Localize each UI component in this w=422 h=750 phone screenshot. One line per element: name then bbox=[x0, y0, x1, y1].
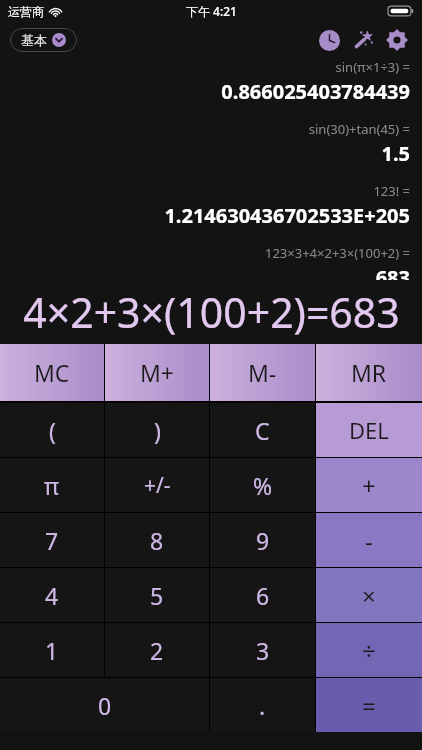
button[interactable]: = bbox=[316, 678, 422, 732]
staticText: 2 bbox=[150, 635, 164, 666]
button[interactable]: π bbox=[0, 458, 104, 512]
staticText: ( bbox=[49, 415, 56, 446]
button[interactable]: + bbox=[316, 458, 422, 512]
button[interactable]: M- bbox=[210, 344, 315, 401]
staticText: MC bbox=[34, 357, 70, 388]
button[interactable]: 9 bbox=[210, 513, 315, 567]
staticText: 7 bbox=[45, 525, 59, 556]
staticText: MR bbox=[351, 357, 387, 388]
staticText: 123×3+4×2+3×(100+2) = bbox=[12, 244, 410, 262]
button[interactable]: 1.5 bbox=[12, 140, 410, 167]
staticText: M+ bbox=[140, 357, 175, 388]
button[interactable]: 4 bbox=[0, 568, 104, 622]
staticText: ) bbox=[154, 415, 161, 446]
staticText: +/- bbox=[144, 471, 171, 500]
button[interactable]: 5 bbox=[105, 568, 209, 622]
button[interactable]: 0.866025403784439 bbox=[12, 78, 410, 105]
button[interactable]: MR bbox=[316, 344, 422, 401]
staticText: 8 bbox=[150, 525, 164, 556]
staticText: C bbox=[255, 415, 270, 446]
button[interactable]: MC bbox=[0, 344, 104, 401]
staticText: 4×2+3×(100+2)=683 bbox=[23, 284, 400, 340]
staticText: % bbox=[253, 470, 273, 501]
button[interactable]: History bbox=[312, 23, 346, 57]
button[interactable]: C bbox=[210, 403, 315, 457]
button[interactable]: 3 bbox=[210, 623, 315, 677]
staticText: ÷ bbox=[362, 634, 376, 667]
staticText: sin(π×1÷3) = bbox=[12, 58, 410, 76]
button[interactable]: Magic bbox=[346, 23, 380, 57]
button[interactable]: 683 bbox=[12, 264, 410, 280]
staticText: × bbox=[362, 579, 376, 612]
button[interactable]: 7 bbox=[0, 513, 104, 567]
button[interactable]: ÷ bbox=[316, 623, 422, 677]
staticText: π bbox=[44, 470, 60, 501]
staticText: 运营商 bbox=[8, 4, 44, 19]
staticText: 下午 4:21 bbox=[186, 3, 237, 19]
button[interactable]: DEL bbox=[316, 403, 422, 457]
staticText: 123! = bbox=[12, 182, 410, 200]
button[interactable]: M+ bbox=[105, 344, 209, 401]
button[interactable]: - bbox=[316, 513, 422, 567]
staticText: 基本 bbox=[21, 32, 47, 48]
staticText: 1 bbox=[45, 635, 59, 666]
button[interactable]: . bbox=[210, 678, 315, 732]
staticText: 6 bbox=[256, 580, 270, 611]
button[interactable]: 1.214630436702533E+205 bbox=[12, 202, 410, 229]
staticText: 0 bbox=[98, 690, 112, 721]
button[interactable]: 1 bbox=[0, 623, 104, 677]
staticText: 3 bbox=[256, 635, 270, 666]
button[interactable]: Settings bbox=[380, 23, 414, 57]
staticText: M- bbox=[248, 357, 277, 388]
staticText: DEL bbox=[349, 415, 389, 445]
button[interactable]: × bbox=[316, 568, 422, 622]
staticText: . bbox=[259, 690, 266, 721]
button[interactable]: 8 bbox=[105, 513, 209, 567]
button[interactable]: +/- bbox=[105, 458, 209, 512]
button[interactable]: 0 bbox=[0, 678, 209, 732]
staticText: 4 bbox=[45, 580, 59, 611]
staticText: = bbox=[362, 689, 376, 722]
staticText: + bbox=[362, 469, 376, 502]
button[interactable]: ) bbox=[105, 403, 209, 457]
button[interactable]: 2 bbox=[105, 623, 209, 677]
button[interactable]: 6 bbox=[210, 568, 315, 622]
staticText: 5 bbox=[150, 580, 164, 611]
button[interactable]: % bbox=[210, 458, 315, 512]
staticText: 9 bbox=[256, 525, 270, 556]
staticText: - bbox=[365, 524, 373, 557]
staticText: sin(30)+tan(45) = bbox=[12, 120, 410, 138]
button[interactable]: 基本 bbox=[10, 28, 77, 52]
button[interactable]: ( bbox=[0, 403, 104, 457]
